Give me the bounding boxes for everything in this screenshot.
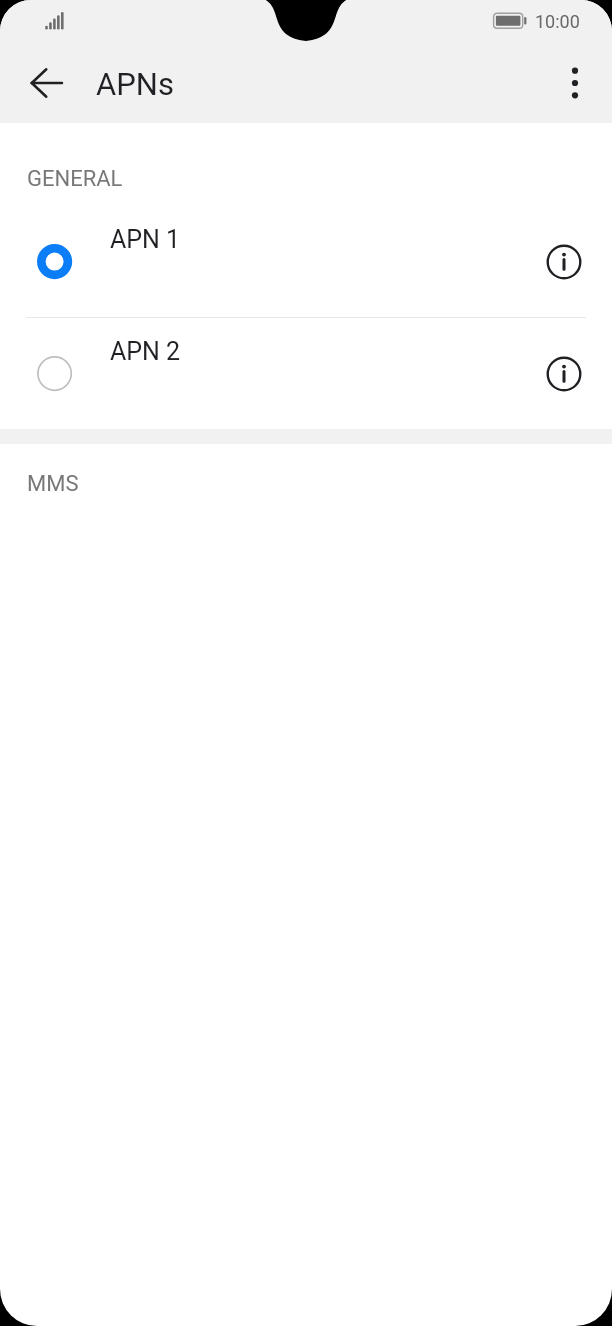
button[interactable]: More options [545, 53, 605, 113]
staticText: APN 1 [110, 225, 181, 254]
button[interactable]: Navigate up [15, 51, 79, 115]
staticText: APNs [96, 66, 174, 102]
button[interactable]: APN 1 details [545, 243, 583, 281]
staticText: GENERAL [27, 166, 123, 192]
button[interactable]: APN 2 details [545, 355, 583, 393]
staticText: 10:00 [535, 11, 580, 32]
button[interactable]: APN 1 [0, 206, 612, 318]
staticText: APN 2 [110, 337, 181, 366]
staticText: MMS [27, 471, 79, 497]
button[interactable]: APN 2 [0, 318, 612, 430]
